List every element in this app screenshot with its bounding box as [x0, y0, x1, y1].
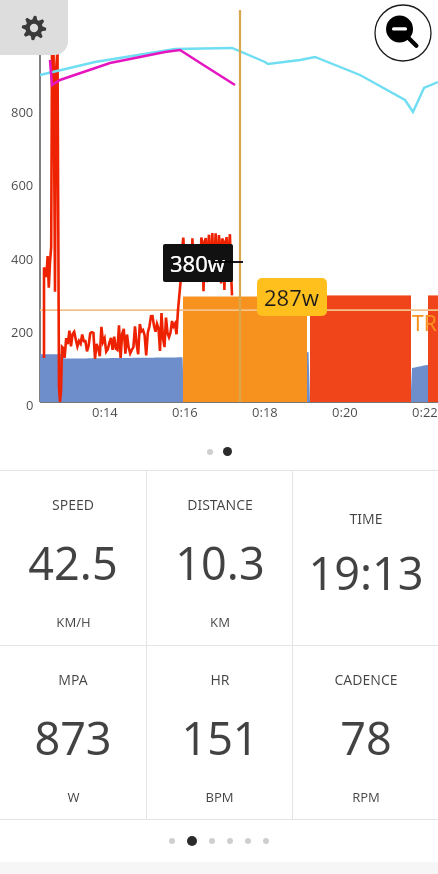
staticText: SPEED — [52, 495, 94, 514]
button[interactable]: MPA — [0, 646, 146, 819]
button[interactable]: Zoom out — [372, 2, 434, 64]
staticText: 78 — [340, 707, 392, 768]
staticText: 0 — [26, 396, 34, 414]
staticText: HR — [210, 670, 230, 689]
staticText: RPM — [352, 788, 380, 806]
staticText: 873 — [34, 707, 112, 768]
staticText: 287w — [264, 282, 320, 312]
staticText: 0:18 — [252, 403, 278, 421]
staticText: 151 — [181, 707, 259, 768]
button[interactable]: DISTANCE — [147, 471, 292, 645]
staticText: 10.3 — [175, 532, 265, 593]
staticText: BPM — [205, 788, 234, 806]
staticText: 800 — [11, 103, 34, 121]
button[interactable]: SPEED — [0, 471, 146, 645]
staticText: 200 — [11, 323, 34, 341]
staticText: CADENCE — [334, 670, 398, 689]
staticText: 42.5 — [28, 532, 118, 593]
staticText: W — [67, 788, 80, 806]
staticText: KM/H — [56, 613, 91, 631]
button[interactable]: HR — [147, 646, 292, 819]
staticText: 380w — [170, 248, 226, 278]
button[interactable]: TIME — [293, 471, 438, 645]
button[interactable]: Settings — [0, 0, 68, 55]
staticText: KM — [210, 613, 230, 631]
staticText: 400 — [11, 250, 34, 268]
staticText: DISTANCE — [187, 495, 253, 514]
staticText: MPA — [58, 670, 88, 689]
button[interactable]: CADENCE — [293, 646, 438, 819]
staticText: 600 — [11, 176, 34, 194]
staticText: 19:13 — [308, 542, 424, 603]
staticText: TR — [412, 309, 437, 338]
staticText: 0:16 — [172, 403, 198, 421]
staticText: 0:22 — [412, 403, 438, 421]
staticText: 0:20 — [332, 403, 358, 421]
staticText: 0:14 — [92, 403, 118, 421]
staticText: TIME — [349, 509, 383, 528]
